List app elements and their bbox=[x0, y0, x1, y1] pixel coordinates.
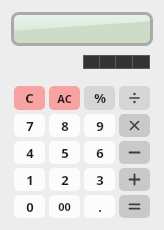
staticText: 4 bbox=[26, 144, 34, 162]
button[interactable]: AC bbox=[49, 86, 80, 110]
staticText: 3 bbox=[96, 171, 104, 189]
button[interactable]: . bbox=[84, 195, 115, 218]
button[interactable]: 4 bbox=[14, 141, 45, 164]
button[interactable]: Multiply bbox=[119, 114, 150, 137]
staticText: 7 bbox=[26, 117, 34, 135]
staticText: . bbox=[98, 198, 102, 216]
staticText: 2 bbox=[61, 171, 69, 189]
button[interactable]: Plus bbox=[119, 168, 150, 191]
staticText: 9 bbox=[96, 117, 104, 135]
staticText: AC bbox=[57, 91, 72, 106]
button[interactable]: 9 bbox=[84, 114, 115, 137]
button[interactable]: 6 bbox=[84, 141, 115, 164]
staticText: 1 bbox=[26, 171, 34, 189]
staticText: 6 bbox=[96, 144, 104, 162]
button[interactable]: 2 bbox=[49, 168, 80, 191]
button[interactable]: Divide bbox=[119, 86, 150, 110]
button[interactable]: C bbox=[14, 86, 45, 110]
staticText: 00 bbox=[58, 199, 71, 214]
staticText: 8 bbox=[61, 117, 69, 135]
button[interactable]: 0 bbox=[14, 195, 45, 218]
button[interactable]: 7 bbox=[14, 114, 45, 137]
staticText: 5 bbox=[61, 144, 69, 162]
button[interactable]: 00 bbox=[49, 195, 80, 218]
button[interactable]: 5 bbox=[49, 141, 80, 164]
button[interactable]: Minus bbox=[119, 141, 150, 164]
button[interactable]: 8 bbox=[49, 114, 80, 137]
button[interactable]: 1 bbox=[14, 168, 45, 191]
button[interactable]: 3 bbox=[84, 168, 115, 191]
staticText: 0 bbox=[26, 198, 34, 216]
button[interactable]: % bbox=[84, 86, 115, 110]
staticText: % bbox=[94, 89, 106, 107]
button[interactable]: Equals bbox=[119, 195, 150, 218]
staticText: C bbox=[25, 89, 34, 107]
